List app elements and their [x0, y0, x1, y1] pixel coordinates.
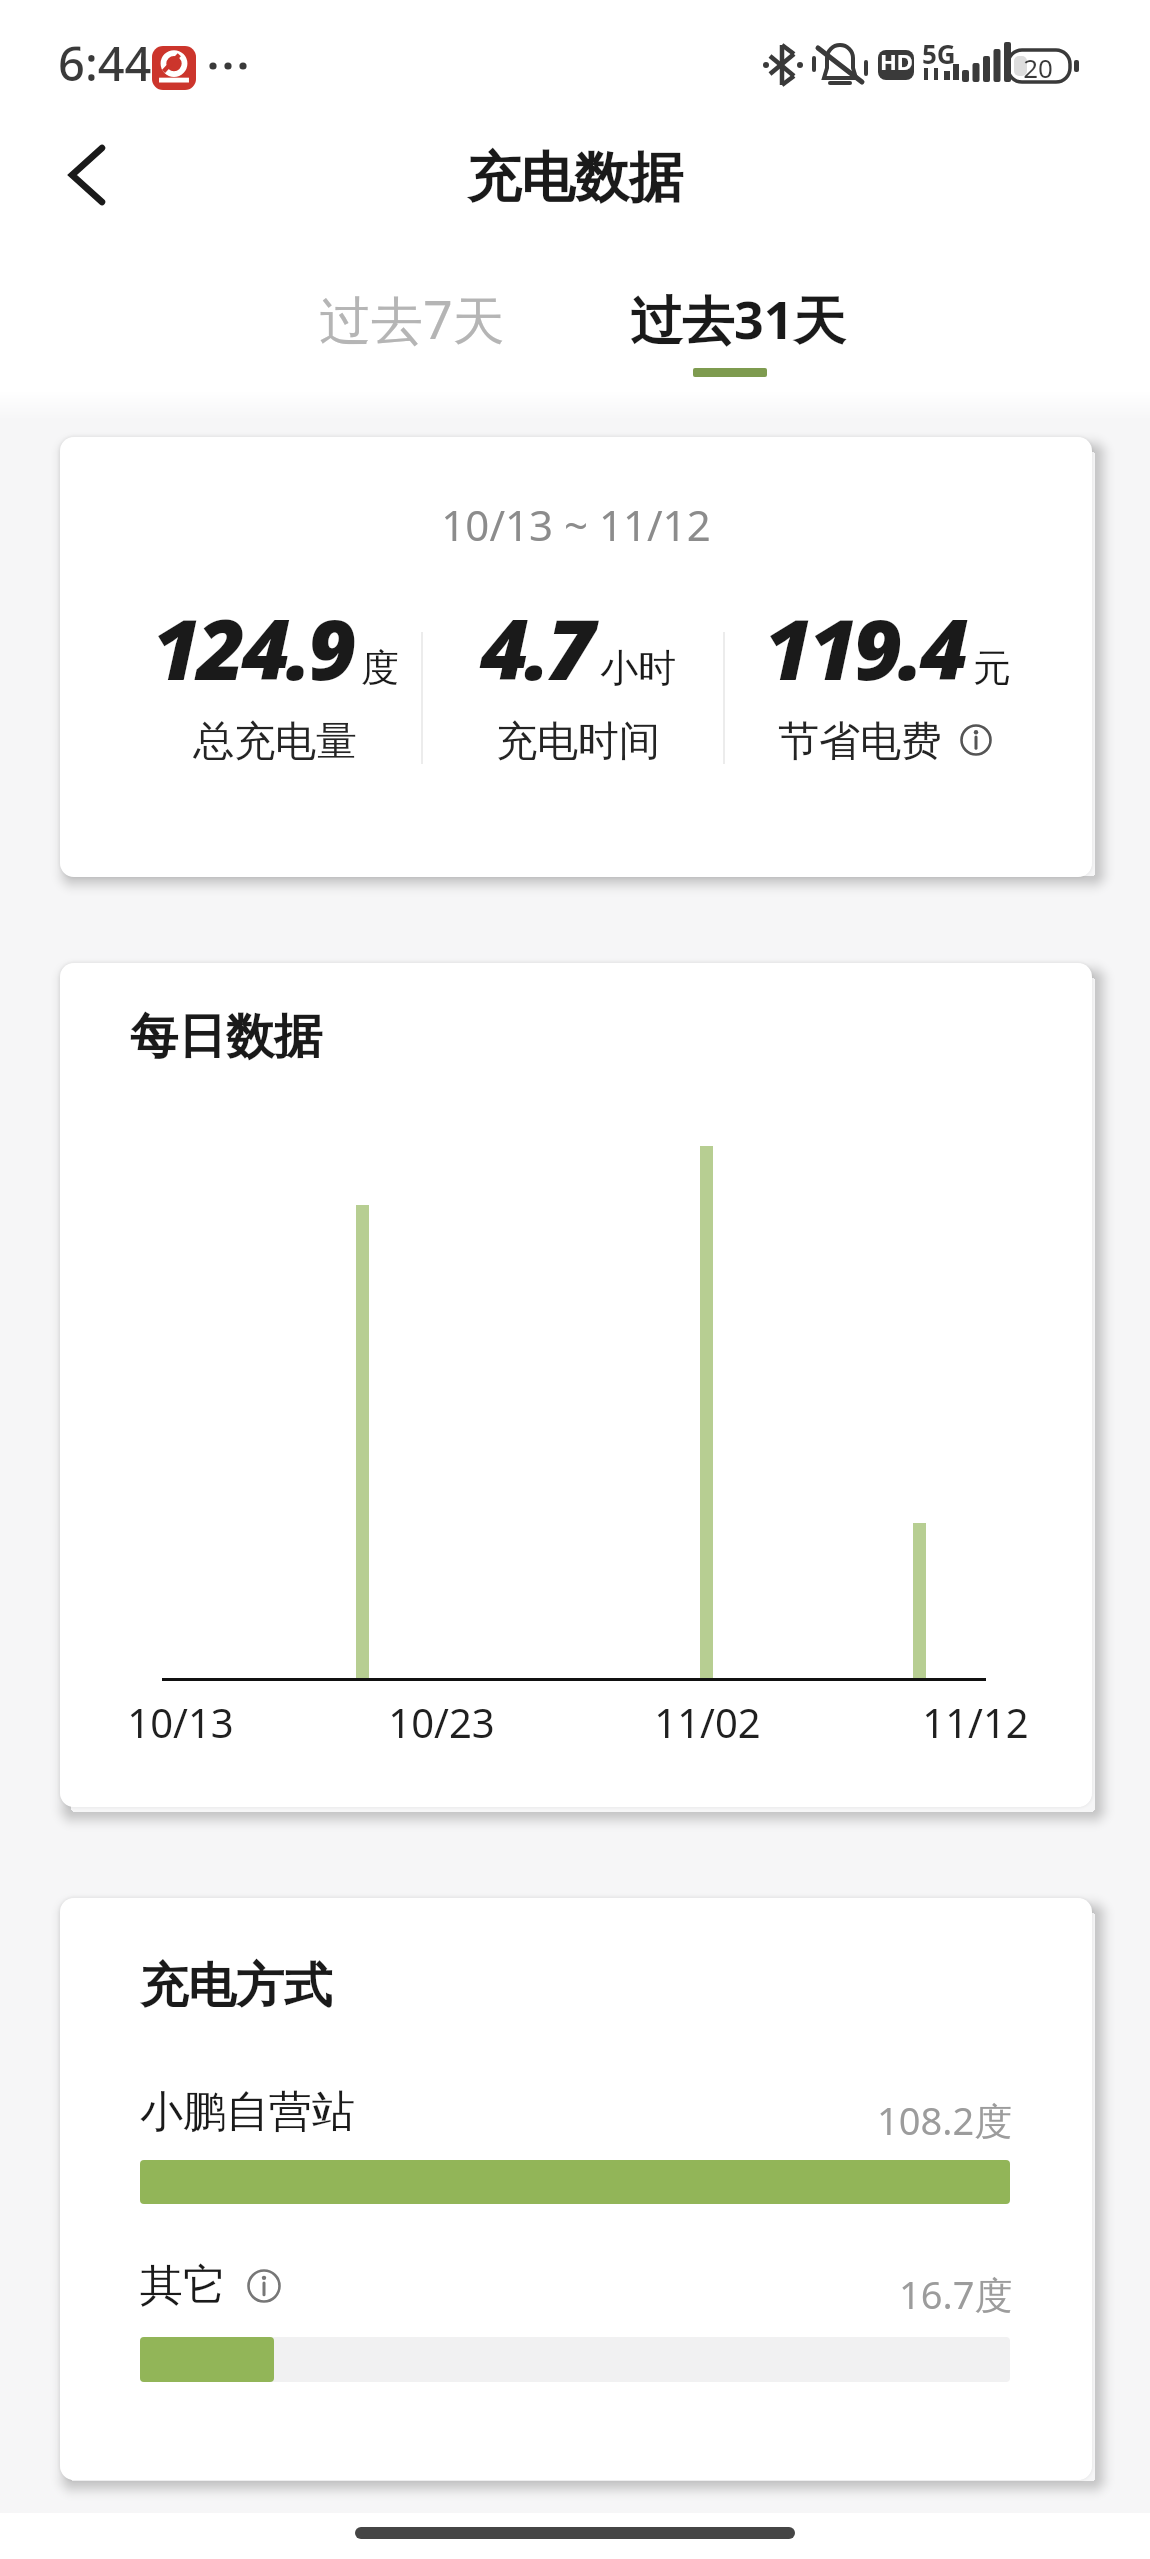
staticText: 充电时间 — [496, 716, 660, 768]
staticText: 充电数据 — [467, 144, 683, 212]
button[interactable]: 节省电费 — [687, 716, 1087, 768]
staticText: 124.9 — [152, 590, 353, 704]
button[interactable]: 过去7天 — [312, 278, 512, 358]
staticText: 度 — [361, 644, 399, 692]
staticText: 节省电费 — [778, 716, 942, 768]
button[interactable]: 其它 — [140, 2259, 284, 2313]
staticText: 10/13 — [127, 1695, 234, 1749]
staticText: 充电方式 — [140, 1956, 332, 2016]
staticText: 每日数据 — [130, 1007, 322, 1067]
staticText: 总充电量 — [193, 716, 357, 768]
staticText: 小时 — [600, 644, 676, 692]
staticText: 16.7度 — [899, 2268, 1013, 2320]
staticText: 过去7天 — [319, 283, 505, 354]
staticText: 108.2度 — [877, 2094, 1013, 2146]
staticText: 10/13 ~ 11/12 — [441, 496, 711, 553]
staticText: HD — [880, 46, 913, 76]
staticText: 11/12 — [922, 1695, 1029, 1749]
staticText: 20 — [1023, 50, 1053, 85]
button[interactable] — [40, 130, 140, 220]
staticText: 11/02 — [654, 1695, 761, 1749]
staticText: 其它 — [140, 2259, 226, 2313]
staticText: 5G — [922, 36, 956, 71]
staticText: 过去31天 — [630, 283, 846, 354]
button[interactable]: 过去31天 — [610, 278, 865, 358]
staticText: 元 — [973, 644, 1011, 692]
staticText: 10/23 — [388, 1695, 495, 1749]
staticText: 119.4 — [764, 590, 965, 704]
staticText: 6:44 — [58, 31, 152, 95]
staticText: 4.7 — [480, 590, 592, 704]
staticText: 小鹏自营站 — [140, 2085, 355, 2139]
